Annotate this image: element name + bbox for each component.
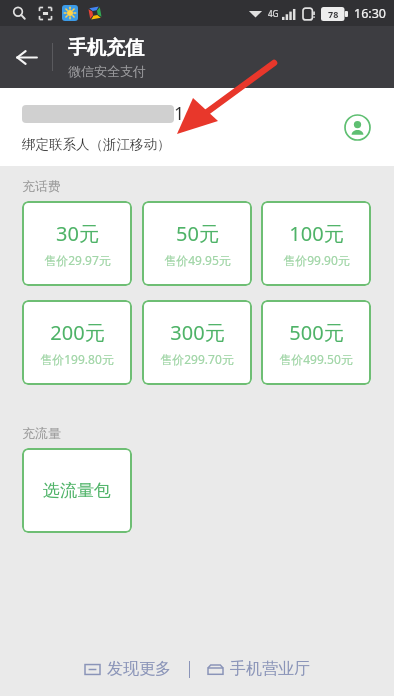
button[interactable]: 50元 [142, 201, 252, 286]
staticText: 手机营业厅 [230, 659, 310, 679]
staticText: 78 [328, 8, 339, 20]
staticText: 发现更多 [107, 659, 171, 679]
staticText: 500元 [289, 319, 344, 346]
button[interactable]: 选流量包 [22, 448, 132, 533]
staticText: 100元 [289, 220, 344, 247]
staticText: 充话费 [22, 178, 61, 194]
staticText: 选流量包 [43, 480, 111, 501]
button[interactable]: 30元 [22, 201, 132, 286]
staticText: 手机充值 [68, 36, 144, 60]
staticText: 售价299.70元 [160, 351, 234, 367]
staticText: 售价29.97元 [44, 252, 111, 268]
button[interactable]: 发现更多 [85, 659, 171, 679]
staticText: 售价499.50元 [279, 351, 353, 367]
button[interactable]: 300元 [142, 300, 252, 385]
staticText: 充流量 [22, 425, 61, 441]
staticText: 300元 [170, 319, 225, 346]
staticText: 微信安全支付 [68, 63, 146, 79]
button[interactable]: 100元 [261, 201, 371, 286]
button[interactable]: Choose contact [341, 111, 373, 143]
staticText: 30元 [56, 220, 99, 247]
staticText: 200元 [50, 319, 105, 346]
staticText: 4G [268, 8, 279, 19]
button[interactable]: 1 [0, 88, 394, 166]
staticText: 绑定联系人（浙江移动） [22, 136, 171, 153]
staticText: 售价49.95元 [164, 252, 231, 268]
button[interactable]: 500元 [261, 300, 371, 385]
button[interactable]: Back [0, 31, 52, 83]
button[interactable]: 手机营业厅 [208, 659, 310, 679]
staticText: 售价199.80元 [40, 351, 114, 367]
staticText: 1 [174, 101, 185, 126]
staticText: 16:30 [354, 5, 386, 22]
button[interactable]: 200元 [22, 300, 132, 385]
staticText: 售价99.90元 [283, 252, 350, 268]
staticText: 50元 [176, 220, 219, 247]
